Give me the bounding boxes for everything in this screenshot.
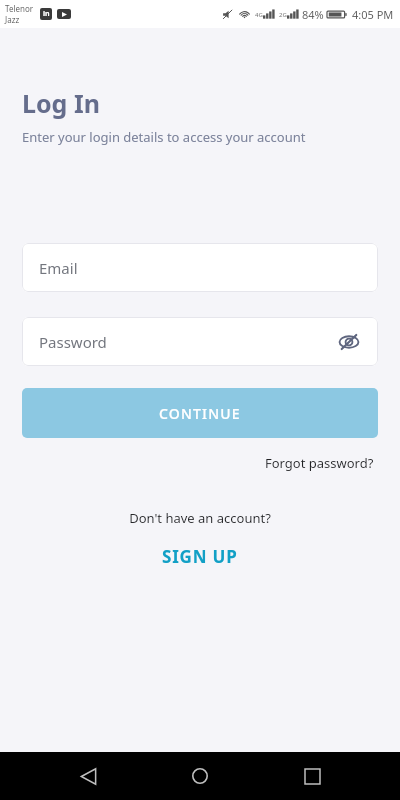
staticText: Don't have an account?: [0, 509, 400, 527]
staticText: 84%: [302, 7, 324, 22]
button[interactable]: Back: [64, 752, 112, 800]
staticText: Enter your login details to access your …: [22, 128, 306, 146]
staticText: Password: [39, 332, 107, 352]
staticText: Email: [39, 258, 78, 278]
button[interactable]: Email: [22, 243, 378, 292]
button[interactable]: SIGN UP: [152, 541, 248, 572]
staticText: CONTINUE: [159, 404, 241, 423]
button[interactable]: Recent apps: [288, 752, 336, 800]
staticText: 4G: [255, 11, 263, 19]
button[interactable]: Home: [176, 752, 224, 800]
staticText: in: [43, 9, 50, 19]
staticText: Jazz: [5, 14, 20, 25]
staticText: SIGN UP: [162, 545, 238, 568]
staticText: Telenor: [5, 3, 34, 14]
button[interactable]: Password: [22, 317, 378, 366]
staticText: Forgot password?: [265, 454, 374, 472]
button[interactable]: Forgot password?: [261, 450, 378, 476]
button[interactable]: CONTINUE: [22, 388, 378, 438]
button[interactable]: Show password: [332, 325, 366, 359]
staticText: 4:05 PM: [352, 7, 394, 22]
staticText: 2G: [279, 11, 287, 19]
staticText: Log In: [22, 86, 100, 120]
